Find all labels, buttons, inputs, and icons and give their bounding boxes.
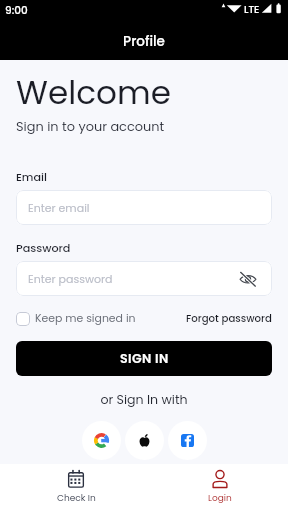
button[interactable]: Keep me signed in	[16, 311, 136, 326]
staticText: Enter email	[28, 200, 90, 215]
button[interactable]: Sign in with Google	[82, 421, 121, 460]
staticText: 9:00	[5, 3, 28, 18]
staticText: Login	[208, 492, 232, 505]
button[interactable]: Login	[148, 464, 288, 512]
staticText: Enter password	[28, 271, 113, 286]
button[interactable]: Enter email	[16, 190, 272, 225]
button[interactable]: Sign in with Apple	[125, 421, 164, 460]
staticText: Sign in to your account	[16, 117, 165, 135]
staticText: Password	[16, 240, 71, 256]
staticText: or Sign In with	[0, 391, 288, 409]
button[interactable]: SIGN IN	[16, 341, 272, 376]
staticText: Keep me signed in	[35, 311, 136, 326]
staticText: LTE	[244, 2, 260, 16]
staticText: Profile	[0, 32, 288, 51]
staticText: Check In	[57, 492, 96, 505]
other: Show password	[239, 271, 257, 286]
button[interactable]: Check In	[4, 464, 148, 512]
button[interactable]: Sign in with Facebook	[168, 421, 207, 460]
staticText: SIGN IN	[120, 350, 169, 368]
button[interactable]: Forgot password	[186, 311, 272, 325]
staticText: Email	[16, 169, 47, 185]
staticText: Welcome	[16, 70, 171, 116]
button[interactable]: Enter password	[16, 261, 272, 296]
